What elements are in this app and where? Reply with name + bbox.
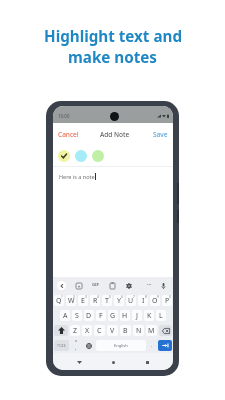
staticText: make notes [68, 47, 157, 68]
button[interactable]: Cancel [58, 130, 79, 139]
button[interactable]: H [120, 310, 130, 321]
button[interactable]: I [138, 295, 148, 306]
button[interactable]: Change language [83, 340, 94, 351]
button[interactable]: , [71, 340, 81, 351]
staticText: Save [153, 130, 168, 139]
button[interactable]: Enter [158, 340, 172, 351]
staticText: Here is a note [59, 173, 95, 180]
staticText: 3 [85, 295, 87, 299]
staticText: C [97, 326, 102, 336]
staticText: GIF [92, 282, 99, 288]
button[interactable]: A [60, 310, 70, 321]
button[interactable]: Voice input [159, 281, 168, 290]
staticText: N [136, 326, 142, 336]
button[interactable]: X [82, 325, 92, 336]
button[interactable]: Back [57, 281, 66, 290]
staticText: P [165, 296, 170, 306]
button[interactable]: Blue highlight [75, 150, 87, 162]
button[interactable]: W [66, 295, 76, 306]
staticText: L [159, 311, 163, 321]
staticText: Y [117, 296, 121, 306]
button[interactable]: O [150, 295, 160, 306]
button[interactable]: T [102, 295, 112, 306]
button[interactable]: Yellow highlight [58, 150, 70, 162]
button[interactable]: S [72, 310, 82, 321]
staticText: O [152, 296, 158, 306]
staticText: 6 [121, 295, 123, 299]
button[interactable]: Y [114, 295, 124, 306]
staticText: 7 [133, 295, 135, 299]
button[interactable]: Backspace [159, 325, 172, 336]
button[interactable]: U [126, 295, 136, 306]
button[interactable]: L [156, 310, 166, 321]
staticText: Q [56, 296, 62, 306]
button[interactable]: Home [105, 354, 121, 370]
button[interactable]: Green highlight [92, 150, 104, 162]
staticText: F [99, 311, 103, 321]
staticText: 8 [145, 295, 147, 299]
button[interactable]: B [120, 325, 131, 336]
staticText: B [123, 326, 128, 336]
button[interactable]: Z [70, 325, 80, 336]
staticText: S [75, 311, 79, 321]
staticText: Add Note [100, 130, 130, 139]
staticText: K [147, 311, 152, 321]
staticText: , [75, 345, 77, 351]
staticText: English [114, 343, 128, 348]
button[interactable]: C [94, 325, 105, 336]
button[interactable]: K [144, 310, 154, 321]
button[interactable]: ?123 [54, 340, 69, 351]
staticText: . [151, 342, 153, 349]
button[interactable]: Back [71, 354, 87, 370]
staticText: 5 [109, 295, 111, 299]
staticText: M [148, 326, 155, 336]
staticText: U [128, 296, 134, 306]
button[interactable]: R [90, 295, 100, 306]
staticText: I [142, 296, 145, 306]
staticText: Highlight text and [44, 26, 182, 47]
staticText: 9 [157, 295, 159, 299]
button[interactable]: Stickers [74, 281, 83, 290]
button[interactable]: Clipboard [108, 281, 117, 290]
staticText: ?123 [57, 343, 66, 348]
button[interactable]: G [108, 310, 118, 321]
staticText: T [105, 296, 109, 306]
button[interactable]: . [148, 340, 156, 351]
staticText: 4 [97, 295, 99, 299]
staticText: 10:00 [58, 113, 70, 119]
staticText: ... [147, 280, 152, 287]
button[interactable]: D [84, 310, 94, 321]
staticText: R [93, 296, 98, 306]
staticText: D [86, 311, 92, 321]
staticText: X [85, 326, 90, 336]
button[interactable]: V [107, 325, 118, 336]
staticText: Z [73, 326, 78, 336]
button[interactable]: M [146, 325, 157, 336]
button[interactable]: E [78, 295, 88, 306]
button[interactable]: N [133, 325, 144, 336]
button[interactable]: Q [54, 295, 64, 306]
button[interactable]: Shift [54, 325, 68, 336]
staticText: W [68, 296, 75, 306]
staticText: Cancel [58, 130, 79, 139]
staticText: V [110, 326, 115, 336]
button[interactable]: Settings [124, 281, 133, 290]
staticText: A [63, 311, 68, 321]
staticText: H [122, 311, 128, 321]
staticText: 2 [73, 295, 75, 299]
button[interactable]: Save [153, 130, 168, 139]
staticText: J [136, 311, 138, 321]
button[interactable]: P [162, 295, 172, 306]
staticText: E [81, 296, 85, 306]
staticText: G [110, 311, 116, 321]
button[interactable]: F [96, 310, 106, 321]
staticText: 1 [61, 295, 63, 299]
button[interactable]: English [96, 340, 146, 351]
button[interactable]: Recents [139, 354, 155, 370]
button[interactable]: J [132, 310, 142, 321]
staticText: 0 [169, 295, 171, 299]
